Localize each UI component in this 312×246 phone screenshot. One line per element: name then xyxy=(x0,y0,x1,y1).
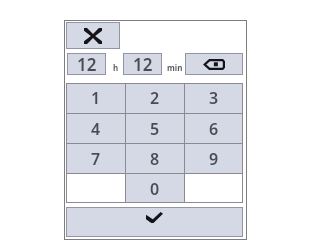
button[interactable]: 5 xyxy=(126,114,184,143)
staticText: 0 xyxy=(150,178,160,200)
staticText: 7 xyxy=(91,148,101,170)
button[interactable]: 9 xyxy=(185,144,243,173)
staticText: 12 xyxy=(133,53,153,75)
button[interactable] xyxy=(185,174,243,203)
button[interactable]: 6 xyxy=(185,114,243,143)
staticText: 4 xyxy=(91,118,101,140)
button[interactable]: 12 xyxy=(123,53,162,75)
staticText: h xyxy=(113,62,119,73)
button[interactable]: 12 xyxy=(67,53,106,75)
button[interactable]: Confirm xyxy=(66,207,243,237)
staticText: 2 xyxy=(150,87,160,109)
staticText: 1 xyxy=(91,87,101,109)
button[interactable]: 0 xyxy=(126,174,184,203)
staticText: 9 xyxy=(209,148,219,170)
button[interactable]: Backspace xyxy=(185,53,243,75)
button[interactable] xyxy=(66,174,125,203)
staticText: 5 xyxy=(150,118,160,140)
button[interactable]: 2 xyxy=(126,83,184,113)
button[interactable]: 4 xyxy=(66,114,125,143)
button[interactable]: 8 xyxy=(126,144,184,173)
staticText: 8 xyxy=(150,148,160,170)
staticText: min xyxy=(167,62,183,73)
staticText: 12 xyxy=(77,53,97,75)
button[interactable]: 3 xyxy=(185,83,243,113)
button[interactable]: 7 xyxy=(66,144,125,173)
staticText: 3 xyxy=(209,87,219,109)
button[interactable]: 1 xyxy=(66,83,125,113)
button[interactable]: Close xyxy=(66,22,120,49)
staticText: 6 xyxy=(209,118,219,140)
